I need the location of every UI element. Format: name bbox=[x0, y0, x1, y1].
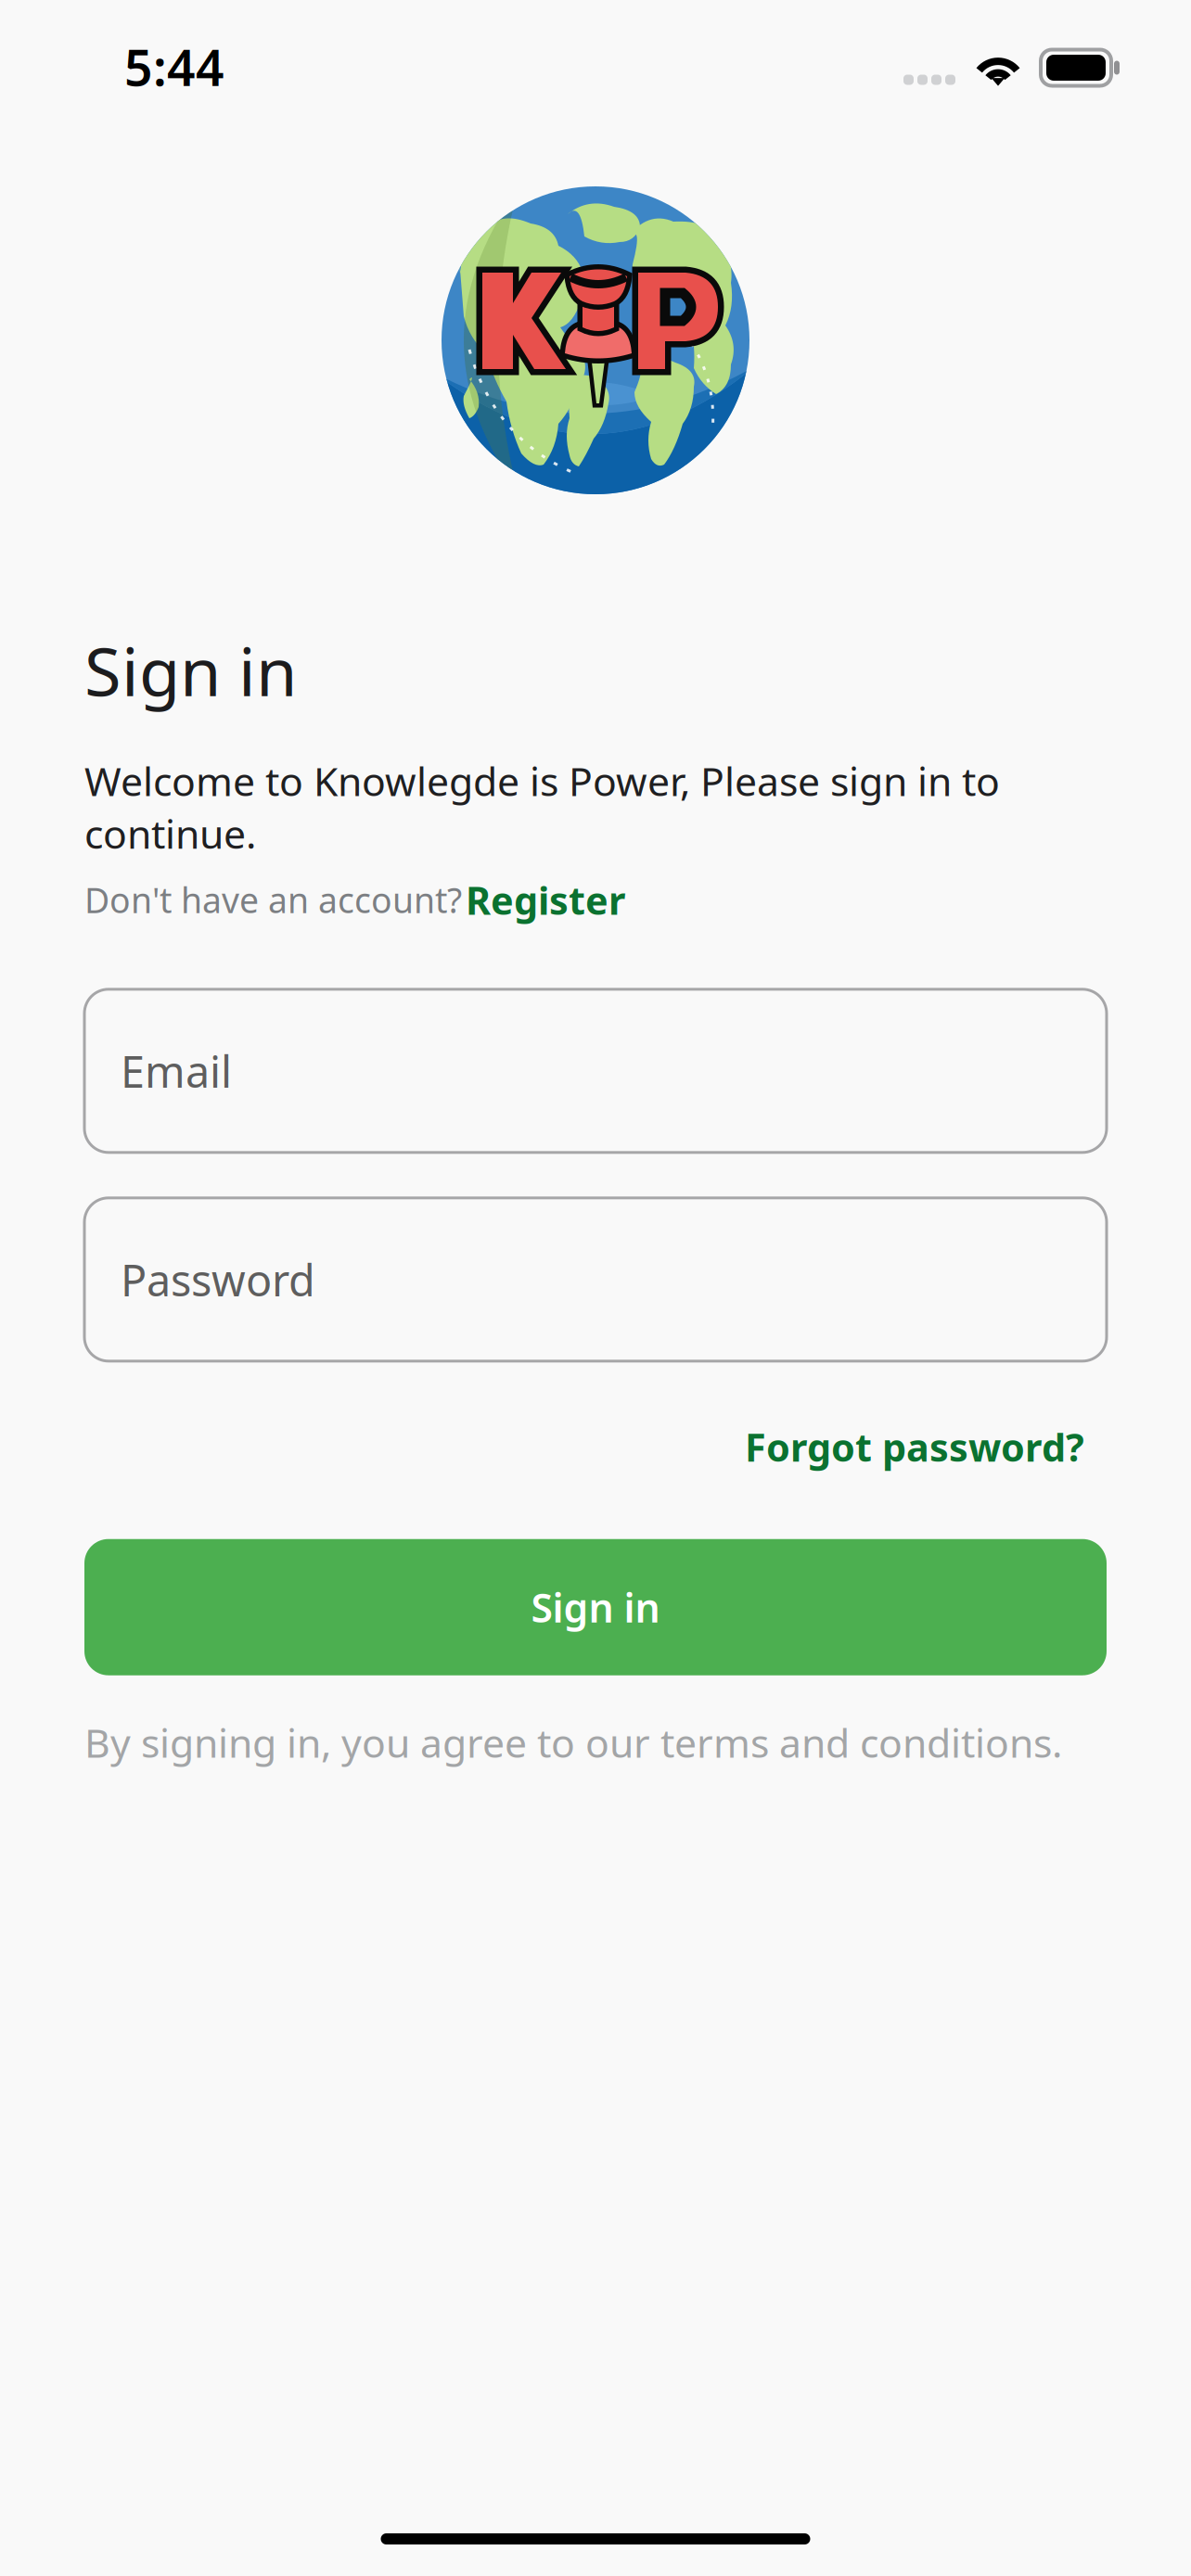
staticText: Email bbox=[121, 1042, 232, 1100]
staticText: Welcome to Knowlegde is Power, Please si… bbox=[84, 754, 1000, 860]
button[interactable]: Forgot password? bbox=[84, 1421, 1107, 1472]
staticText: Sign in bbox=[84, 626, 297, 715]
staticText: By signing in, you agree to our terms an… bbox=[84, 1716, 1062, 1769]
staticText: 5:44 bbox=[124, 34, 224, 100]
staticText: Sign in bbox=[531, 1581, 660, 1634]
staticText: Password bbox=[121, 1251, 315, 1308]
staticText: Forgot password? bbox=[745, 1421, 1084, 1472]
button[interactable]: Password bbox=[84, 1198, 1107, 1361]
staticText: Don't have an account? bbox=[84, 877, 462, 923]
button[interactable]: Don't have an account? bbox=[84, 874, 1107, 925]
button[interactable]: Email bbox=[84, 989, 1107, 1152]
staticText: Register bbox=[466, 874, 625, 925]
button[interactable]: Sign in bbox=[84, 1539, 1107, 1675]
